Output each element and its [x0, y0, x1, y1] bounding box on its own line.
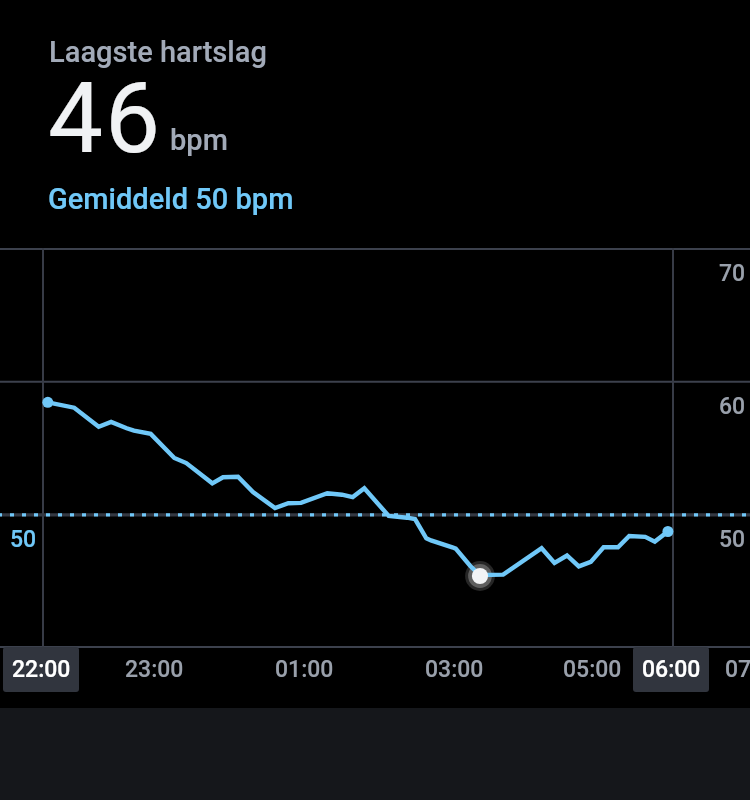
button[interactable]: 01:00: [266, 647, 342, 692]
staticText: 06:00: [642, 656, 701, 683]
button[interactable]: 22:00: [3, 647, 79, 692]
button[interactable]: 03:00: [416, 647, 492, 692]
button[interactable]: 07:00: [716, 647, 750, 692]
staticText: 03:00: [425, 656, 484, 683]
staticText: 22:00: [12, 656, 71, 683]
button[interactable]: 23:00: [116, 647, 192, 692]
button[interactable]: 05:00: [554, 647, 630, 692]
staticText: 50: [10, 526, 37, 553]
staticText: Gemiddeld 50 bpm: [48, 182, 294, 216]
staticText: 50: [719, 526, 746, 553]
button[interactable]: 06:00: [633, 647, 709, 692]
staticText: 23:00: [125, 656, 184, 683]
staticText: 01:00: [275, 656, 334, 683]
staticText: 60: [719, 393, 746, 420]
staticText: 46: [48, 61, 163, 176]
button[interactable]: Heart rate graph, 22:00 to 07:00: [0, 0, 750, 800]
staticText: 05:00: [563, 656, 622, 683]
staticText: 07:00: [725, 656, 750, 683]
staticText: bpm: [170, 123, 228, 157]
staticText: Laagste hartslag: [49, 35, 267, 69]
staticText: 70: [719, 260, 746, 287]
